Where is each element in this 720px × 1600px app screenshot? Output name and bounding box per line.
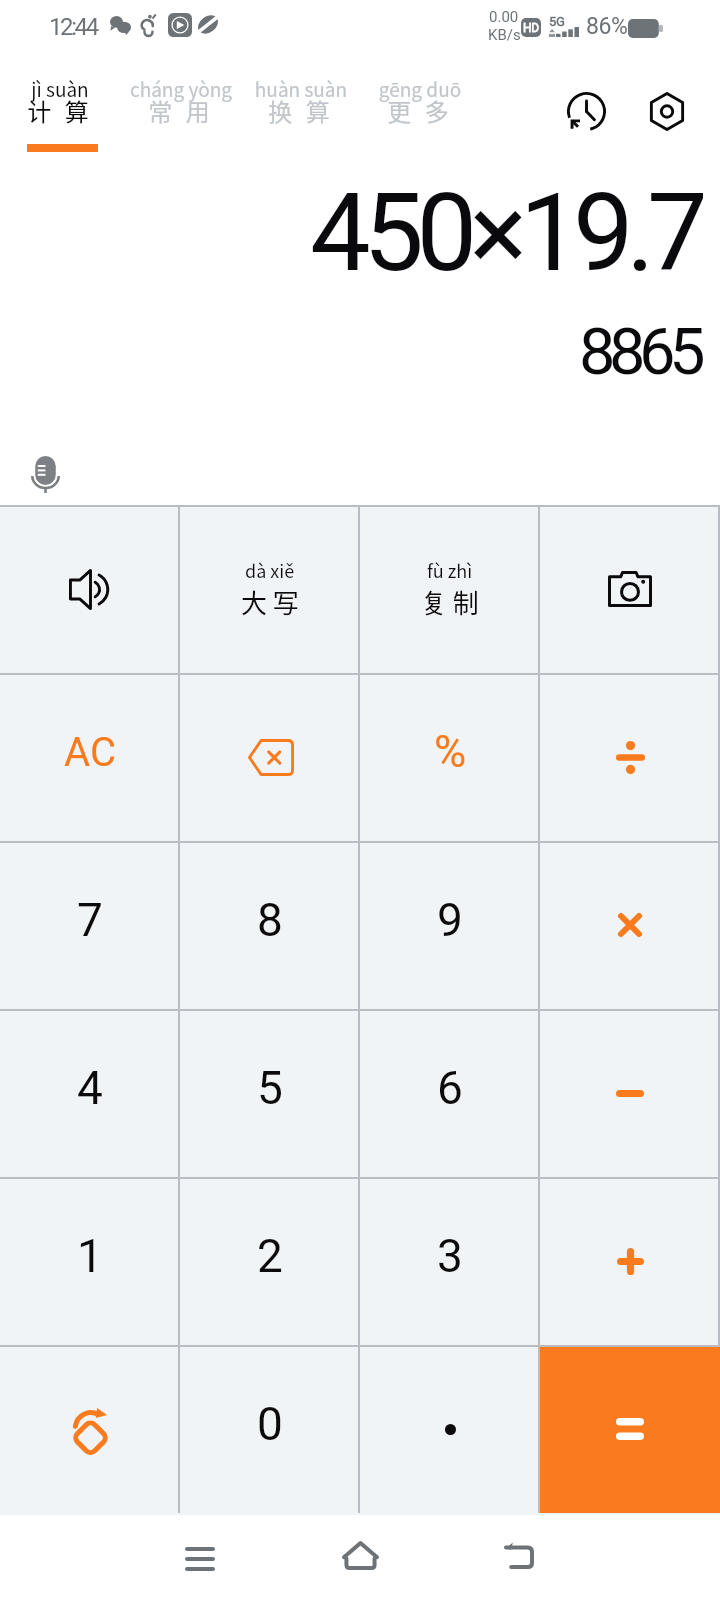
staticText: 450×19.7 (310, 170, 701, 297)
button[interactable]: dà xiě (180, 505, 360, 673)
staticText: 换 算 (241, 93, 361, 128)
button[interactable]: 6 (360, 1009, 540, 1177)
staticText: 8 (257, 893, 283, 947)
button[interactable]: Sound (0, 505, 180, 673)
button[interactable]: Settings (632, 76, 702, 146)
staticText: gēng duō (360, 75, 480, 103)
button[interactable]: cháng yòng (121, 70, 241, 158)
other: Backspace (247, 739, 294, 776)
staticText: fù zhì (427, 557, 473, 583)
staticText: 12:44 (49, 13, 97, 41)
other: Divide (616, 741, 645, 774)
button[interactable]: 5 (180, 1009, 360, 1177)
staticText: 0 (257, 1397, 283, 1451)
staticText: 2 (257, 1229, 283, 1283)
staticText: KB/s (488, 26, 521, 44)
button[interactable]: Equals (540, 1345, 720, 1513)
staticText: 0.00 (489, 8, 519, 26)
button[interactable]: AC (0, 673, 180, 841)
staticText: 3 (437, 1229, 463, 1283)
staticText: 8865 (579, 314, 700, 390)
button[interactable]: 1 (0, 1177, 180, 1345)
button[interactable]: jì suàn (0, 70, 120, 158)
button[interactable]: Voice input (13, 438, 78, 504)
button[interactable]: Decimal point (360, 1345, 540, 1513)
other: Sound (69, 569, 112, 610)
staticText: 计 算 (0, 93, 120, 128)
other: Plus (617, 1248, 644, 1275)
button[interactable]: 9 (360, 841, 540, 1009)
staticText: 4 (77, 1061, 103, 1115)
button[interactable]: fù zhì (360, 505, 540, 673)
staticText: 1 (77, 1229, 103, 1283)
button[interactable]: 2 (180, 1177, 360, 1345)
button[interactable]: Recents (155, 1516, 245, 1600)
button[interactable]: Minus (540, 1009, 720, 1177)
button[interactable]: gēng duō (360, 70, 480, 158)
button[interactable]: % (360, 673, 540, 841)
staticText: 6 (437, 1061, 463, 1115)
staticText: 大 写 (241, 583, 299, 621)
staticText: cháng yòng (121, 75, 241, 103)
button[interactable]: Home (315, 1513, 405, 1598)
staticText: HD (523, 21, 539, 35)
button[interactable]: Camera (540, 505, 720, 673)
other: Multiply (618, 913, 642, 937)
other: Camera (608, 571, 652, 607)
staticText: huàn suàn (241, 75, 361, 103)
staticText: % (434, 726, 467, 778)
button[interactable]: Plus (540, 1177, 720, 1345)
staticText: 常 用 (121, 93, 241, 128)
staticText: 7 (77, 893, 103, 947)
staticText: 5 (257, 1061, 283, 1115)
staticText: AC (64, 729, 116, 776)
staticText: 更 多 (360, 93, 480, 128)
button[interactable]: Back (474, 1513, 564, 1598)
button[interactable]: huàn suàn (241, 70, 361, 158)
staticText: 9 (437, 893, 463, 947)
other: Equals (616, 1418, 644, 1440)
other: Rotate screen (74, 1407, 107, 1451)
button[interactable]: 8 (180, 841, 360, 1009)
button[interactable]: 7 (0, 841, 180, 1009)
button[interactable]: Rotate screen (0, 1345, 180, 1513)
button[interactable]: History (551, 76, 621, 146)
other: Minus (616, 1090, 644, 1097)
staticText: 复 制 (421, 583, 479, 621)
staticText: jì suàn (0, 75, 120, 103)
button[interactable]: 3 (360, 1177, 540, 1345)
staticText: 5G (549, 14, 565, 29)
button[interactable]: Multiply (540, 841, 720, 1009)
other: Decimal point (445, 1424, 456, 1435)
button[interactable]: 4 (0, 1009, 180, 1177)
button[interactable]: 0 (180, 1345, 360, 1513)
staticText: dà xiě (245, 557, 295, 583)
button[interactable]: Backspace (180, 673, 360, 841)
button[interactable]: Divide (540, 673, 720, 841)
staticText: 86% (586, 13, 628, 40)
